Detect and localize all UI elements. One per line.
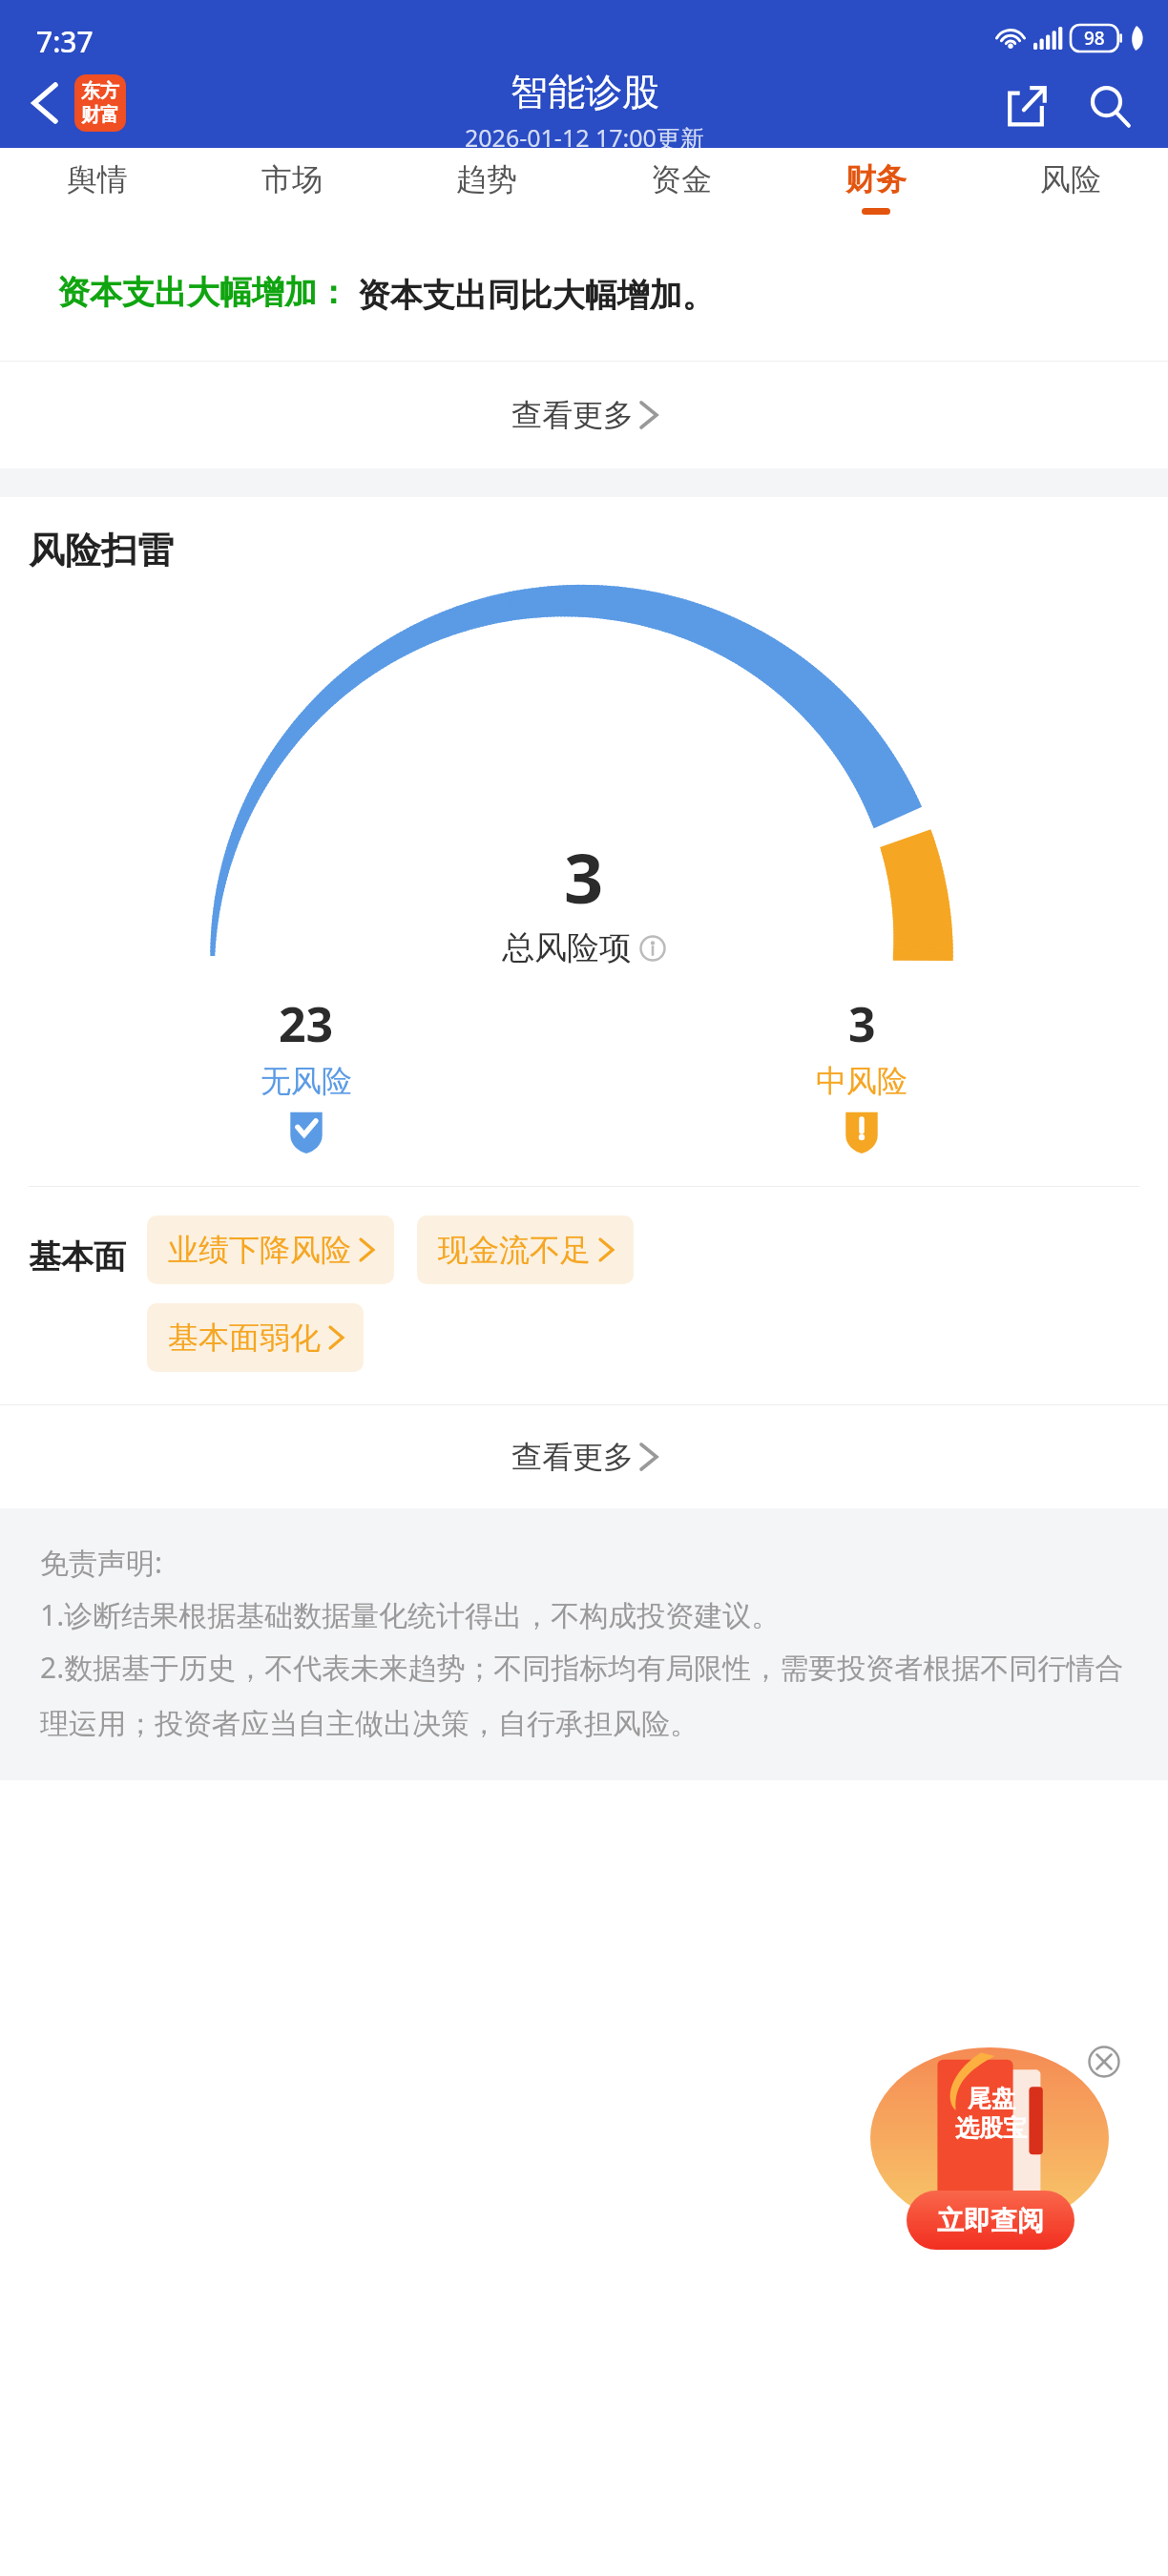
- staticText: 现金流不足: [438, 1231, 591, 1269]
- staticText: 基本面弱化: [168, 1319, 321, 1357]
- button[interactable]: Back: [19, 77, 71, 129]
- button[interactable]: 说明: [639, 935, 666, 962]
- button[interactable]: 3: [584, 991, 1139, 1153]
- staticText: 财富: [81, 103, 119, 127]
- button[interactable]: 资金: [584, 148, 779, 227]
- button[interactable]: 市场: [195, 148, 389, 227]
- button[interactable]: 现金流不足: [417, 1215, 634, 1284]
- staticText: 舆情: [67, 160, 128, 198]
- staticText: 3: [564, 830, 604, 924]
- staticText: 无风险: [261, 1062, 352, 1100]
- button[interactable]: 基本面弱化: [147, 1303, 364, 1372]
- staticText: 资本支出同比大幅增加。: [349, 272, 715, 316]
- staticText: 资金: [651, 160, 712, 198]
- staticText: 2.数据基于历史，不代表未来趋势；不同指标均有局限性，需要投资者根据不同行情合理…: [40, 1648, 1128, 1742]
- button[interactable]: 风险: [973, 148, 1168, 227]
- staticText: 智能诊股: [511, 69, 659, 115]
- staticText: 选股宝: [955, 2113, 1027, 2143]
- button[interactable]: 业绩下降风险: [147, 1215, 394, 1284]
- staticText: 1.诊断结果根据基础数据量化统计得出，不构成投资建议。: [40, 1595, 781, 1634]
- button[interactable]: 23: [29, 991, 584, 1153]
- button[interactable]: 舆情: [0, 148, 195, 227]
- button[interactable]: 趋势: [389, 148, 584, 227]
- button[interactable]: 查看更多: [0, 362, 1168, 468]
- button[interactable]: 财务: [779, 148, 973, 227]
- staticText: 东方: [81, 79, 119, 103]
- staticText: 免责声明:: [40, 1543, 163, 1582]
- staticText: 立即查阅: [937, 2204, 1044, 2237]
- staticText: 市场: [261, 160, 323, 198]
- staticText: 总风险项: [502, 927, 632, 968]
- button[interactable]: 资本支出大幅增加：: [29, 238, 1139, 350]
- button[interactable]: Share: [994, 74, 1057, 137]
- staticText: 98: [1084, 26, 1105, 51]
- staticText: 趋势: [456, 160, 517, 198]
- staticText: 风险扫雷: [29, 528, 174, 573]
- button[interactable]: Search: [1078, 74, 1141, 137]
- staticText: 资本支出大幅增加：: [57, 272, 349, 313]
- staticText: 中风险: [816, 1062, 907, 1100]
- staticText: 查看更多: [511, 1438, 634, 1476]
- staticText: 风险: [1040, 160, 1101, 198]
- staticText: 3: [848, 991, 876, 1056]
- button[interactable]: 东方财富: [74, 74, 126, 132]
- staticText: 尾盘: [968, 2084, 1015, 2113]
- staticText: 查看更多: [511, 396, 634, 434]
- button[interactable]: Close: [1082, 2040, 1126, 2084]
- staticText: 2026-01-12 17:00更新: [465, 121, 704, 148]
- button[interactable]: 立即查阅: [907, 2191, 1074, 2250]
- staticText: 业绩下降风险: [168, 1231, 351, 1269]
- staticText: 基本面: [29, 1236, 126, 1278]
- staticText: 7:37: [36, 22, 94, 61]
- staticText: 23: [279, 991, 334, 1056]
- button[interactable]: 查看更多: [0, 1405, 1168, 1508]
- staticText: 财务: [845, 160, 907, 198]
